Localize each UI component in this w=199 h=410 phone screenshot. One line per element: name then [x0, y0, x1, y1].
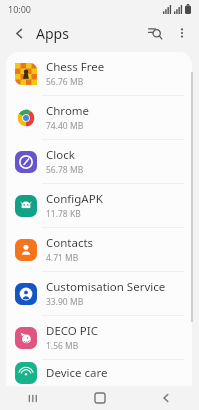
button[interactable]: Clock [6, 140, 192, 183]
button[interactable]: Recents [0, 386, 67, 410]
staticText: 74.40 MB [46, 120, 84, 132]
staticText: Contacts [46, 235, 94, 251]
button[interactable]: DECO PIC [6, 316, 192, 359]
staticText: 56.78 MB [46, 164, 84, 176]
staticText: Clock [46, 147, 75, 163]
staticText: Device care [46, 365, 108, 381]
button[interactable]: ConfigAPK [6, 184, 192, 227]
button[interactable]: Home [67, 386, 133, 410]
staticText: ConfigAPK [46, 191, 103, 207]
staticText: 56.76 MB [46, 76, 84, 88]
button[interactable]: Device care [6, 360, 192, 386]
staticText: Customisation Service [46, 279, 166, 295]
button[interactable]: Search [141, 19, 169, 47]
staticText: Chess Free [46, 59, 105, 75]
staticText: Apps [36, 24, 69, 43]
button[interactable]: Customisation Service [6, 272, 192, 315]
staticText: 10:00 [8, 3, 32, 15]
button[interactable]: More options [169, 20, 195, 46]
staticText: 33.90 MB [46, 296, 84, 308]
button[interactable]: Back [6, 20, 32, 46]
button[interactable]: Chrome [6, 96, 192, 139]
button[interactable]: Contacts [6, 228, 192, 271]
staticText: 11.78 KB [46, 208, 81, 220]
staticText: 1.56 MB [46, 340, 79, 352]
staticText: Chrome [46, 103, 90, 119]
staticText: DECO PIC [46, 323, 98, 339]
staticText: 4.71 MB [46, 252, 79, 264]
button[interactable]: Back [133, 386, 199, 410]
button[interactable]: Chess Free [6, 52, 192, 95]
